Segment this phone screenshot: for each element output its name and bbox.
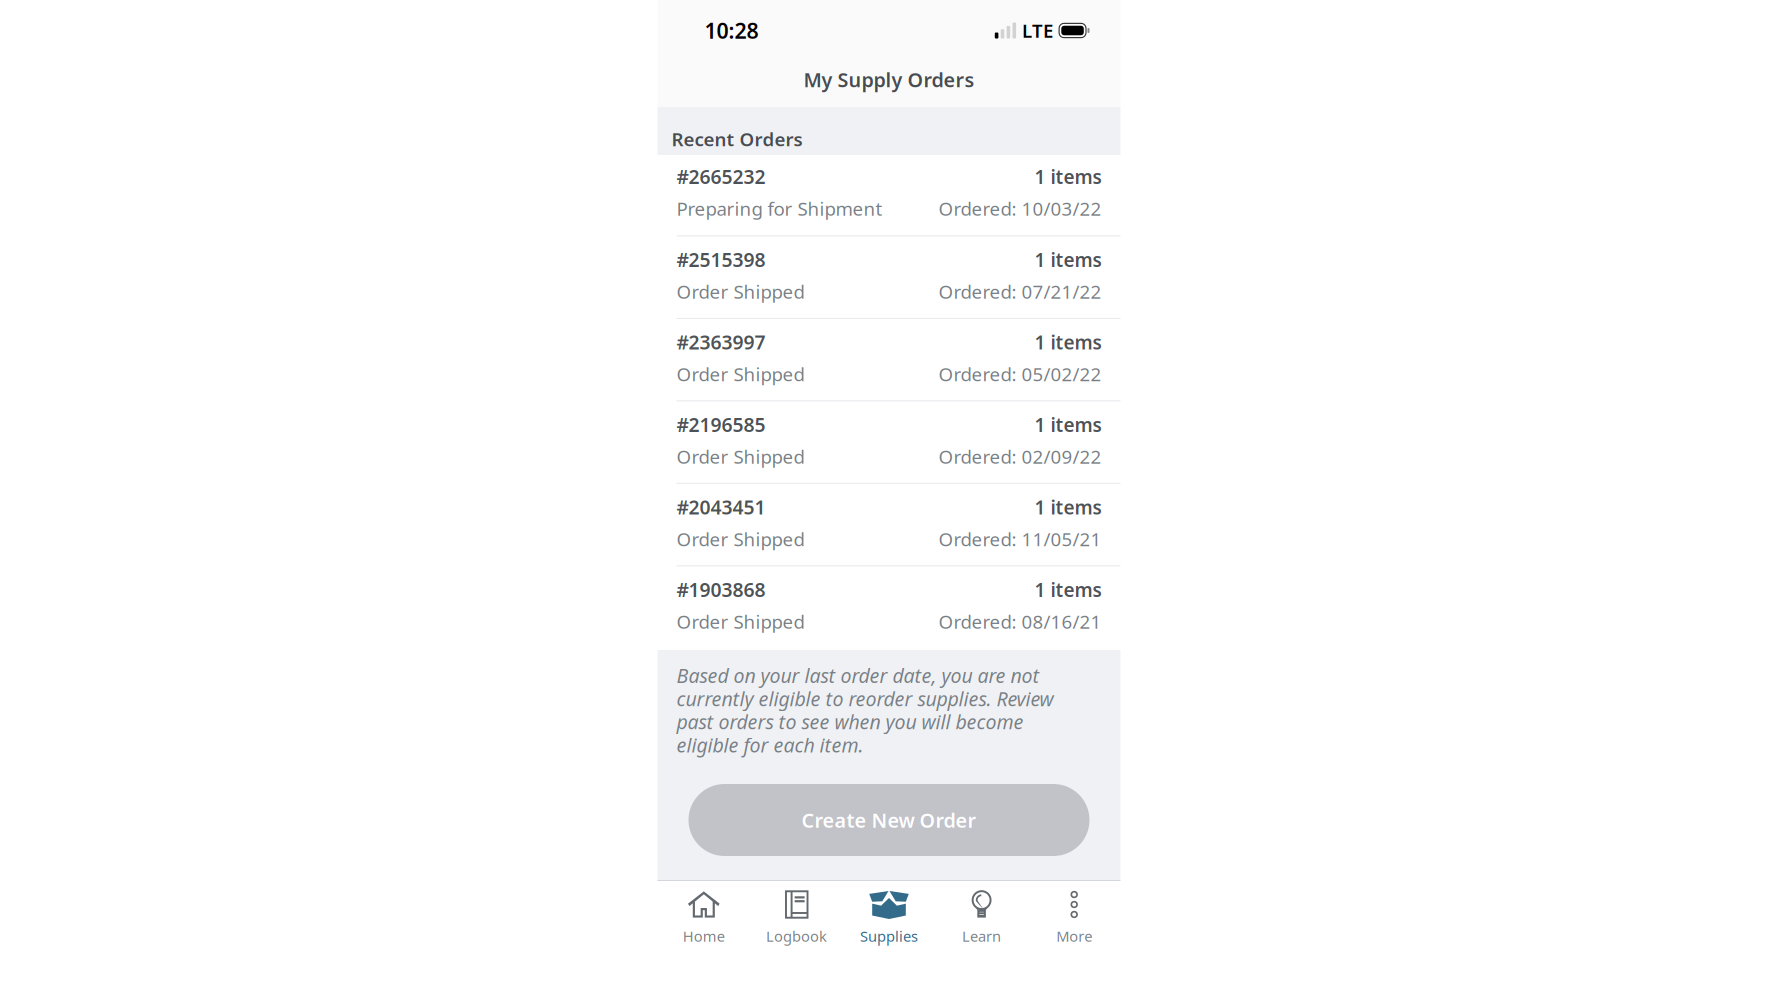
button[interactable]: Home <box>657 881 750 946</box>
staticText: #1903868 <box>676 576 765 603</box>
staticText: Learn <box>962 926 1001 946</box>
button[interactable]: Supplies <box>843 881 935 946</box>
button[interactable]: Create New Order <box>688 784 1089 856</box>
staticText: LTE <box>1022 18 1053 43</box>
staticText: Order Shipped <box>676 526 804 552</box>
button[interactable]: #2363997 <box>657 320 1120 402</box>
staticText: #2043451 <box>676 494 765 520</box>
staticText: Based on your last order date, you are n… <box>676 662 1053 758</box>
staticText: Ordered: 05/02/22 <box>938 361 1101 387</box>
staticText: 10:28 <box>704 16 758 45</box>
staticText: Ordered: 10/03/22 <box>938 196 1101 221</box>
button[interactable]: #1903868 <box>657 567 1120 650</box>
staticText: Ordered: 07/21/22 <box>938 279 1101 304</box>
button[interactable]: #2043451 <box>657 485 1120 567</box>
staticText: 1 items <box>1034 329 1101 355</box>
button[interactable]: #2665232 <box>657 155 1120 237</box>
button[interactable]: Logbook <box>750 881 843 946</box>
staticText: Home <box>683 926 725 946</box>
staticText: Logbook <box>766 926 827 946</box>
staticText: Ordered: 11/05/21 <box>938 526 1101 552</box>
staticText: My Supply Orders <box>803 66 974 93</box>
staticText: Preparing for Shipment <box>676 196 882 221</box>
staticText: 1 items <box>1034 577 1101 602</box>
staticText: Recent Orders <box>671 126 802 152</box>
button[interactable]: More <box>1028 881 1120 946</box>
button[interactable]: #2515398 <box>657 237 1120 320</box>
staticText: #2515398 <box>676 246 765 273</box>
staticText: Order Shipped <box>676 609 804 634</box>
staticText: Order Shipped <box>676 279 804 304</box>
button[interactable]: Learn <box>935 881 1028 946</box>
staticText: #2196585 <box>676 411 765 438</box>
staticText: More <box>1056 926 1092 946</box>
staticText: Order Shipped <box>676 361 804 387</box>
staticText: Supplies <box>860 926 918 946</box>
staticText: #2665232 <box>676 163 765 190</box>
staticText: 1 items <box>1034 494 1101 520</box>
staticText: #2363997 <box>676 329 765 355</box>
staticText: 1 items <box>1034 247 1101 272</box>
staticText: Order Shipped <box>676 444 804 469</box>
staticText: Create New Order <box>801 807 976 833</box>
staticText: Ordered: 08/16/21 <box>938 609 1101 634</box>
staticText: 1 items <box>1034 164 1101 189</box>
staticText: Ordered: 02/09/22 <box>938 444 1101 469</box>
button[interactable]: #2196585 <box>657 402 1120 485</box>
staticText: 1 items <box>1034 412 1101 437</box>
